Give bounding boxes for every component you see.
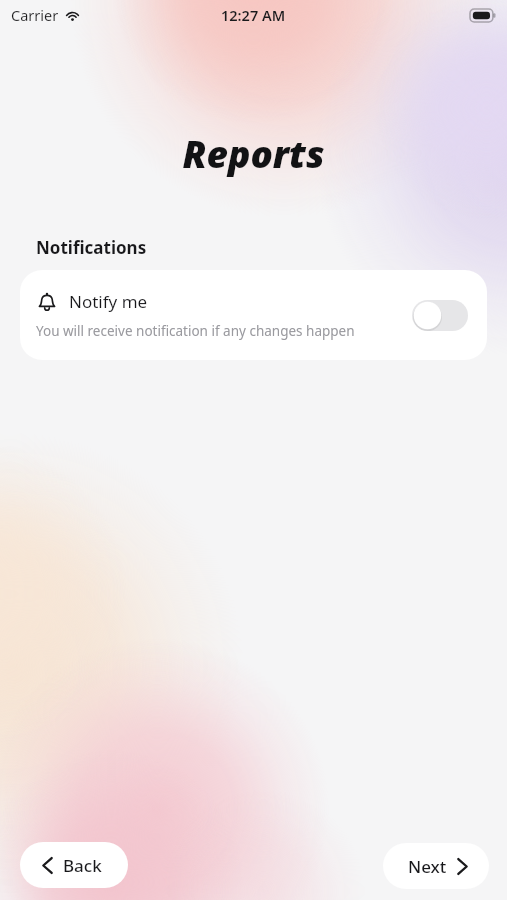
button[interactable]: Next — [383, 843, 489, 889]
button[interactable]: Back — [20, 842, 128, 888]
staticText: Next — [408, 855, 447, 878]
button[interactable]: Notify me toggle — [412, 300, 468, 331]
staticText: Notifications — [36, 236, 147, 259]
staticText: Reports — [0, 128, 507, 178]
staticText: 12:27 AM — [221, 5, 286, 25]
staticText: You will receive notification if any cha… — [36, 322, 355, 340]
staticText: Notify me — [69, 290, 148, 313]
staticText: Carrier — [11, 5, 59, 25]
staticText: Back — [63, 854, 102, 877]
button[interactable]: Notify me — [20, 270, 487, 360]
